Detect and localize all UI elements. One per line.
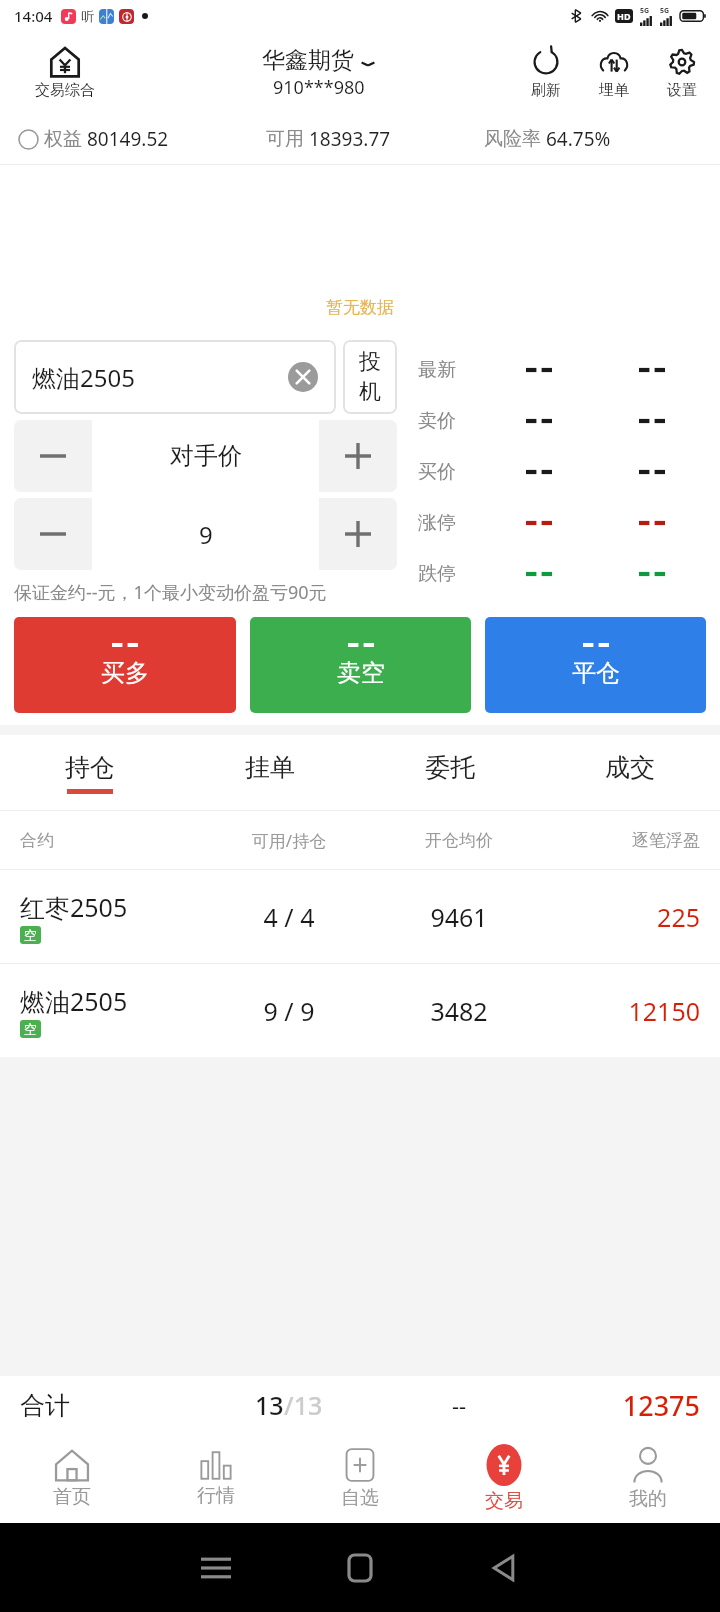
staticText: 合计 (20, 1390, 202, 1421)
staticText: 12375 (542, 1387, 700, 1424)
staticText: 13 (255, 1388, 284, 1422)
button[interactable]: 燃油2505 (14, 340, 336, 414)
staticText: 交易综合 (35, 81, 95, 100)
staticText: 80149.52 (87, 126, 169, 152)
button[interactable]: 设置 (654, 47, 710, 100)
staticText: 12150 (542, 994, 700, 1028)
staticText: 我的 (629, 1487, 667, 1511)
staticText: 5G (660, 6, 670, 16)
staticText: 64.75% (546, 126, 611, 152)
button[interactable]: 我的 (576, 1434, 720, 1523)
staticText: 合约 (20, 830, 202, 851)
staticText: 燃油2505 (32, 361, 135, 394)
staticText: 平仓 (572, 658, 620, 688)
staticText: 9 / 9 (202, 994, 376, 1028)
staticText: 权益 (44, 127, 82, 151)
button[interactable]: 减少 (14, 498, 92, 570)
staticText: 18393.77 (309, 126, 391, 152)
staticText: 首页 (53, 1485, 91, 1509)
staticText: 空 (24, 927, 37, 943)
staticText: 空 (24, 1021, 37, 1037)
staticText: 红枣2505 (20, 890, 128, 924)
button[interactable]: 行情 (144, 1434, 288, 1523)
staticText: 买多 (101, 658, 149, 688)
staticText: 卖价 (418, 409, 482, 433)
staticText: 委托 (425, 752, 475, 783)
staticText: 成交 (605, 752, 655, 783)
staticText: 华鑫期货 (262, 46, 354, 75)
staticText: 风险率 (484, 127, 541, 151)
staticText: 可用 (266, 127, 304, 151)
button[interactable]: 增加 (319, 420, 397, 492)
button[interactable]: 交易 (432, 1434, 576, 1523)
button[interactable]: 主屏幕 (288, 1555, 432, 1581)
staticText: 埋单 (599, 81, 629, 100)
staticText: 听 (81, 8, 94, 24)
button[interactable]: 对手价 (92, 420, 319, 492)
button[interactable]: 挂单 (180, 735, 360, 810)
staticText: 可用/持仓 (202, 829, 376, 852)
button[interactable]: 卖空 (250, 617, 471, 713)
button[interactable]: 返回 (432, 1555, 576, 1581)
button[interactable]: 最近任务 (144, 1557, 288, 1579)
button[interactable]: 清除 (288, 362, 318, 392)
staticText: 9 (199, 518, 213, 551)
staticText: 最新 (418, 358, 482, 382)
staticText: 设置 (667, 81, 697, 100)
staticText: 涨停 (418, 511, 482, 535)
button[interactable]: 成交 (540, 735, 720, 810)
staticText: 投 机 (359, 348, 381, 406)
staticText: 14:04 (14, 6, 53, 26)
staticText: 5G (640, 6, 650, 16)
button[interactable]: 燃油2505 (0, 964, 720, 1057)
staticText: 卖空 (337, 658, 385, 688)
staticText: HD (617, 10, 631, 22)
button[interactable]: 红枣2505 (0, 870, 720, 963)
staticText: -- (376, 1390, 542, 1420)
button[interactable]: 自选 (288, 1434, 432, 1523)
staticText: 4 / 4 (202, 900, 376, 934)
staticText: 行情 (197, 1484, 235, 1508)
button[interactable]: 首页 (0, 1434, 144, 1523)
staticText: 挂单 (245, 752, 295, 783)
button[interactable]: 9 (92, 498, 319, 570)
staticText: 225 (542, 900, 700, 934)
staticText: 刷新 (531, 81, 561, 100)
button[interactable]: 减少 (14, 420, 92, 492)
button[interactable]: 平仓 (485, 617, 706, 713)
staticText: 燃油2505 (20, 984, 128, 1018)
staticText: 跌停 (418, 562, 482, 586)
staticText: /13 (284, 1388, 323, 1422)
button[interactable]: 权益 (18, 126, 266, 152)
staticText: 910***980 (273, 75, 365, 100)
button[interactable]: 投 机 (343, 340, 397, 414)
staticText: 自选 (341, 1486, 379, 1510)
staticText: 持仓 (65, 752, 115, 783)
button[interactable]: 持仓 (0, 735, 180, 810)
button[interactable]: 买多 (14, 617, 236, 713)
staticText: 买价 (418, 460, 482, 484)
staticText: 3482 (376, 994, 542, 1028)
staticText: 保证金约--元，1个最小变动价盈亏90元 (14, 580, 327, 605)
button[interactable]: 刷新 (518, 47, 574, 100)
staticText: 交易 (485, 1489, 523, 1513)
staticText: 9461 (376, 900, 542, 934)
button[interactable]: 委托 (360, 735, 540, 810)
button[interactable]: 交易综合 (10, 44, 120, 102)
button[interactable]: 增加 (319, 498, 397, 570)
button[interactable]: 华鑫期货 (262, 46, 376, 100)
staticText: 暂无数据 (326, 297, 394, 318)
staticText: 开仓均价 (376, 830, 542, 851)
staticText: 逐笔浮盈 (542, 830, 700, 851)
button[interactable]: 埋单 (586, 47, 642, 100)
staticText: 对手价 (170, 441, 242, 471)
